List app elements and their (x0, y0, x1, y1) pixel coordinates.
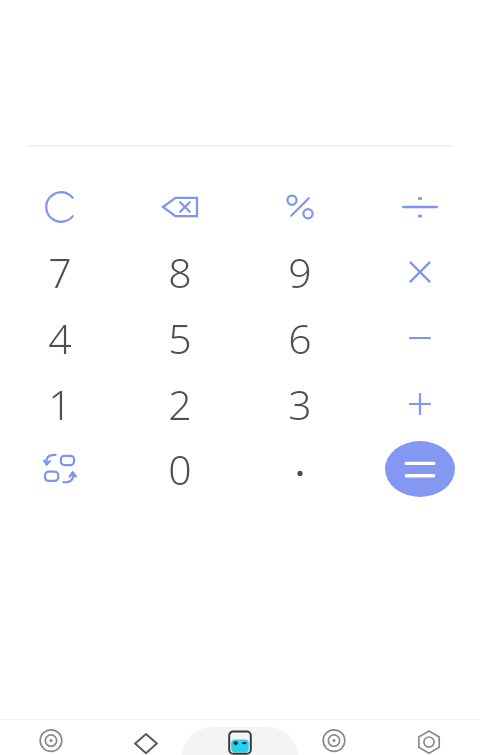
button[interactable]: Percent (245, 176, 355, 238)
button[interactable]: Compass (103, 719, 189, 755)
button[interactable]: Level (291, 719, 377, 755)
staticText: 3 (288, 376, 312, 432)
staticText: 7 (48, 244, 72, 300)
button[interactable]: 7 (5, 241, 115, 303)
button[interactable]: 3 (245, 373, 355, 435)
button[interactable]: 0 (125, 438, 235, 500)
staticText: 1 (48, 376, 72, 432)
button[interactable]: 6 (245, 307, 355, 369)
staticText: 2 (168, 376, 192, 432)
button[interactable]: Multiply (365, 241, 475, 303)
button[interactable]: Calculator (197, 719, 283, 755)
button[interactable]: Convert units (5, 438, 115, 500)
button[interactable]: Backspace (125, 176, 235, 238)
staticText: 9 (288, 244, 312, 300)
staticText: 8 (168, 244, 192, 300)
staticText: 4 (48, 310, 72, 366)
button[interactable]: Divide (365, 176, 475, 238)
button[interactable]: 2 (125, 373, 235, 435)
button[interactable]: Minus (365, 307, 475, 369)
button[interactable]: Plus (365, 373, 475, 435)
staticText: 0 (168, 441, 192, 497)
button[interactable]: Flashlight (386, 719, 472, 755)
button[interactable]: Clear (5, 176, 115, 238)
button[interactable]: 5 (125, 307, 235, 369)
button[interactable]: Equals (365, 438, 475, 500)
staticText: 6 (288, 310, 312, 366)
button[interactable]: 9 (245, 241, 355, 303)
button[interactable]: Recorder (8, 719, 94, 755)
button[interactable]: 1 (5, 373, 115, 435)
button[interactable]: 4 (5, 307, 115, 369)
button[interactable]: 8 (125, 241, 235, 303)
button[interactable]: Decimal point (245, 438, 355, 500)
staticText: 5 (168, 310, 192, 366)
